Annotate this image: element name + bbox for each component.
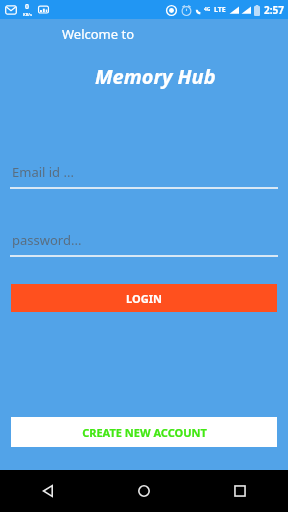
- staticText: Memory Hub: [95, 63, 216, 90]
- button[interactable]: Home: [96, 470, 192, 512]
- staticText: LTE: [214, 5, 226, 15]
- staticText: KB/s: [23, 12, 32, 17]
- button[interactable]: password...: [0, 230, 288, 250]
- button[interactable]: Back: [0, 470, 96, 512]
- staticText: Email id ...: [12, 163, 74, 181]
- button[interactable]: Recent apps: [192, 470, 288, 512]
- button[interactable]: LOGIN: [11, 284, 277, 312]
- staticText: Welcome to: [62, 25, 135, 43]
- button[interactable]: CREATE NEW ACCOUNT: [11, 417, 277, 447]
- staticText: LOGIN: [126, 291, 162, 306]
- staticText: 0: [25, 2, 30, 12]
- staticText: 2:57: [264, 3, 284, 17]
- button[interactable]: Email id ...: [0, 162, 288, 182]
- staticText: password...: [12, 231, 82, 249]
- staticText: CREATE NEW ACCOUNT: [82, 425, 207, 440]
- staticText: 4G: [204, 6, 211, 13]
